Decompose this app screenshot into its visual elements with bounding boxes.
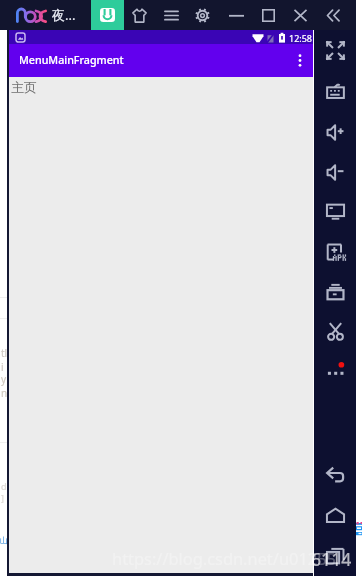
staticText: tli [1,346,8,374]
button[interactable]: Nox player tab [91,0,124,30]
staticText: d] [1,480,8,504]
button[interactable]: Fullscreen [322,37,348,63]
staticText: 12:58 [289,32,313,44]
button[interactable]: Shared folder [322,278,348,304]
button[interactable]: Install APK [322,239,348,265]
button[interactable]: Back [322,461,348,487]
button[interactable]: Settings [190,0,214,30]
button[interactable]: More options [287,44,313,77]
button[interactable]: Minimize [224,0,248,30]
button[interactable]: Screen cut [322,318,348,344]
staticText: MenuMainFragment [19,53,124,68]
button[interactable]: Themes [127,0,151,30]
button[interactable]: Volume down [322,159,348,185]
button[interactable]: Recent apps [322,543,348,569]
staticText: yn [1,372,8,400]
staticText: 山 [0,535,7,545]
button[interactable]: Keyboard [322,78,348,104]
staticText: 主页 [11,79,37,95]
button[interactable]: Home [322,502,348,528]
button[interactable]: Collapse sidebar [321,0,345,30]
staticText: 6114 [311,547,352,571]
staticText: 夜... [52,6,76,24]
staticText: https://blog.csdn.net/u01255 [112,547,336,569]
button[interactable]: Screenshot [322,198,348,224]
button[interactable]: Maximize [256,0,280,30]
button[interactable]: Multi instance [159,0,183,30]
button[interactable]: More tools [322,356,348,382]
button[interactable]: Close [288,0,312,30]
button[interactable]: Volume up [322,119,348,145]
